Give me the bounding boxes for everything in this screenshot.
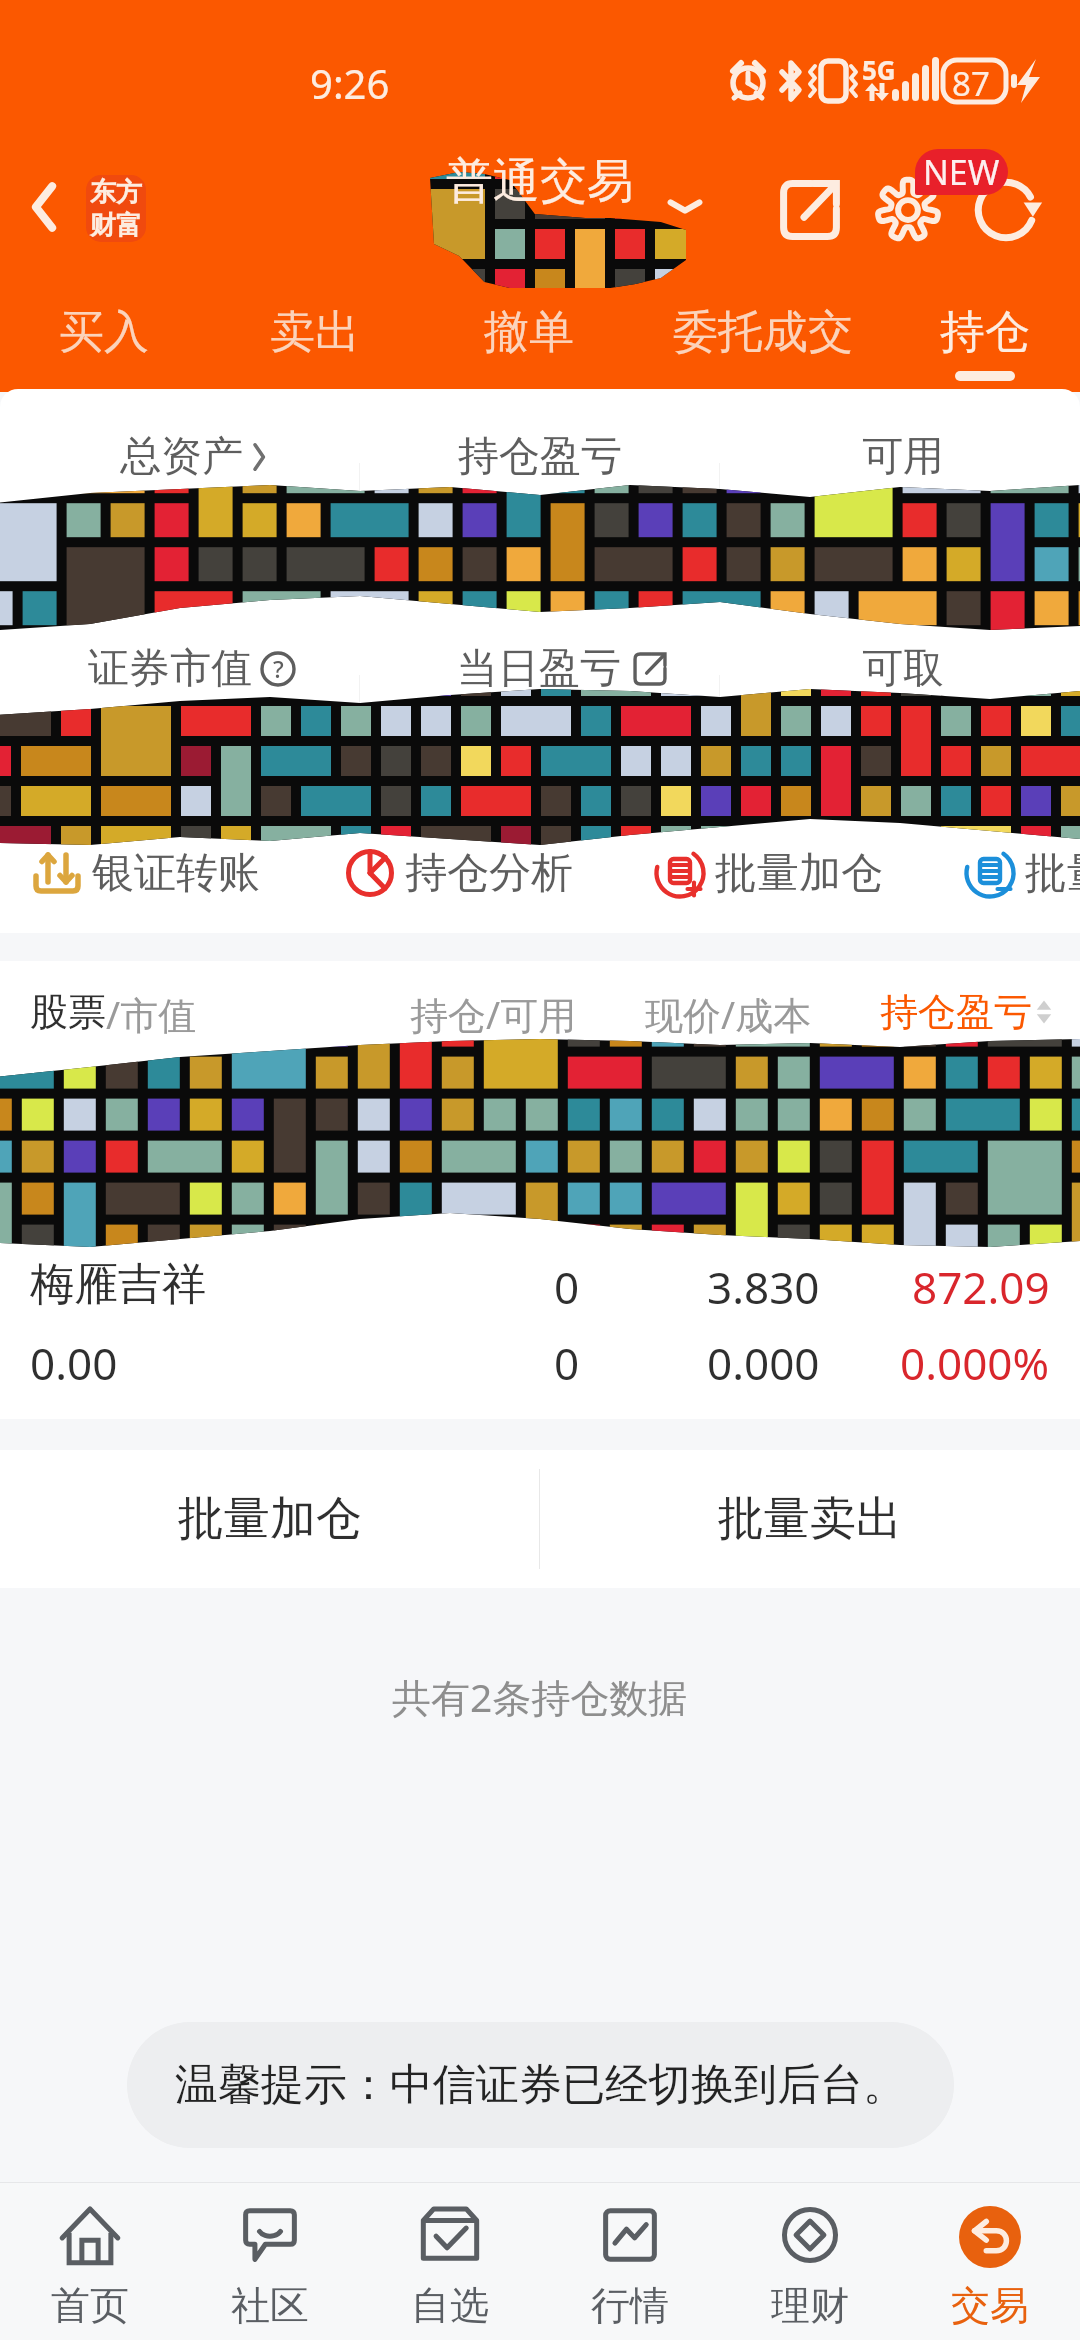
staticText: 当日盈亏 [457, 643, 621, 695]
button[interactable]: 银证转账 [32, 841, 260, 905]
button[interactable]: 当日盈亏 [457, 643, 667, 695]
staticText: 普通交易 [446, 152, 634, 211]
button[interactable]: 持仓盈亏 [880, 988, 1056, 1036]
staticText: 理财 [771, 2281, 849, 2330]
button[interactable]: 理财 [720, 2182, 900, 2340]
button[interactable]: 梅雁吉祥 [0, 1257, 1080, 1317]
button[interactable]: 自选 [360, 2182, 540, 2340]
button[interactable]: 委托成交 [636, 300, 889, 392]
staticText: /市值 [106, 988, 197, 1040]
staticText: 总资产 [120, 431, 243, 483]
staticText: 9:26 [310, 56, 390, 110]
staticText: 872.09 [912, 1257, 1050, 1317]
staticText: 社区 [231, 2281, 309, 2330]
button[interactable]: Back [15, 178, 73, 236]
staticText: 财富 [90, 209, 142, 242]
staticText: 0.000% [900, 1333, 1050, 1393]
staticText: 0.000 [707, 1333, 820, 1393]
button[interactable]: 交易 [900, 2182, 1080, 2340]
button[interactable]: 批量卖出 [540, 1450, 1080, 1588]
staticText: 自选 [411, 2281, 489, 2330]
button[interactable]: 批量加仓 [655, 841, 883, 905]
staticText: 5G [862, 52, 896, 87]
button[interactable]: 撤单 [422, 300, 636, 392]
staticText: 卖出 [270, 304, 360, 361]
staticText: 3.830 [707, 1257, 820, 1317]
staticText: 温馨提示：中信证券已经切换到后台。 [175, 2058, 906, 2112]
staticText: 0 [554, 1333, 580, 1393]
button[interactable]: 批量加仓 [0, 1450, 539, 1588]
staticText: 持仓盈亏 [458, 431, 622, 483]
staticText: 批量卖出 [718, 1490, 902, 1548]
staticText: 可用 [862, 431, 944, 483]
staticText: 0.00 [30, 1333, 118, 1393]
button[interactable]: Settings [858, 165, 958, 255]
button[interactable]: 总资产 [120, 431, 269, 483]
button[interactable]: 批量 [965, 841, 1080, 905]
button[interactable]: 东方财富 [86, 175, 146, 242]
button[interactable]: Refresh [956, 165, 1056, 255]
staticText: 可取 [862, 643, 944, 695]
staticText: 东方 [90, 176, 142, 209]
button[interactable]: 社区 [180, 2182, 360, 2340]
button[interactable]: 买入 [0, 300, 208, 392]
button[interactable]: 持仓 [889, 300, 1080, 392]
staticText: 首页 [51, 2281, 129, 2330]
staticText: 持仓/可用 [410, 988, 577, 1040]
staticText: 行情 [591, 2281, 669, 2330]
staticText: 批量加仓 [715, 847, 883, 900]
staticText: 持仓盈亏 [880, 988, 1032, 1036]
staticText: 撤单 [484, 304, 574, 361]
staticText: 批量加仓 [178, 1490, 362, 1548]
staticText: 共有2条持仓数据 [392, 1670, 688, 1723]
button[interactable]: 卖出 [208, 300, 422, 392]
button[interactable]: 首页 [0, 2182, 180, 2340]
staticText: 委托成交 [673, 304, 853, 361]
button[interactable]: 普通交易 [440, 152, 710, 224]
staticText: 批量 [1025, 847, 1080, 900]
button[interactable]: 0.00 [0, 1333, 1080, 1393]
button[interactable]: 行情 [540, 2182, 720, 2340]
staticText: 梅雁吉祥 [30, 1257, 206, 1312]
button[interactable]: 证券市值 [88, 643, 296, 695]
staticText: 买入 [59, 304, 149, 361]
staticText: 银证转账 [92, 847, 260, 900]
staticText: 87 [952, 61, 990, 106]
staticText: ? [273, 652, 284, 685]
button[interactable]: Open in new [760, 165, 860, 255]
staticText: 0 [554, 1257, 580, 1317]
staticText: NEW [923, 149, 1000, 195]
button[interactable]: 持仓分析 [345, 841, 573, 905]
staticText: 持仓分析 [405, 847, 573, 900]
staticText: 现价/成本 [645, 988, 812, 1040]
staticText: 证券市值 [88, 643, 252, 695]
staticText: 持仓 [940, 304, 1030, 361]
staticText: 交易 [951, 2281, 1029, 2330]
staticText: 股票 [30, 988, 106, 1036]
